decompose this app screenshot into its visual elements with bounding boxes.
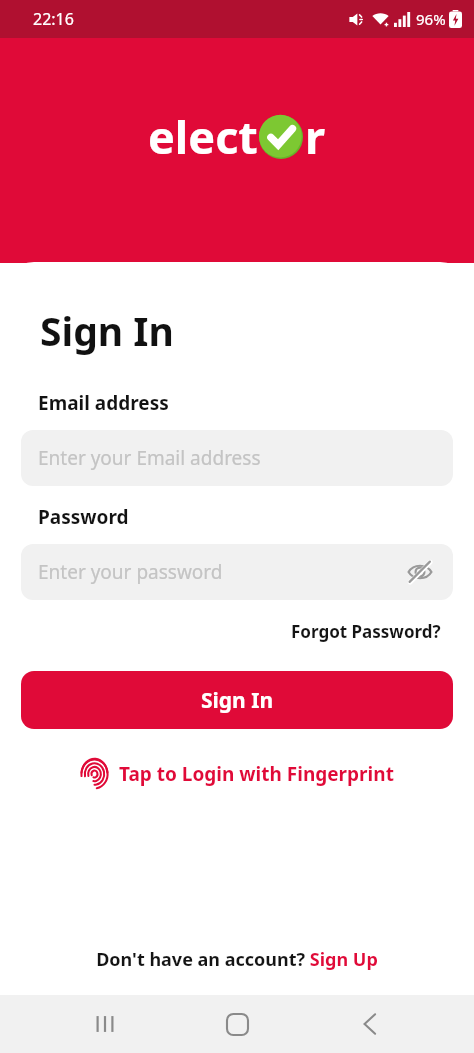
button[interactable]: Home [209, 996, 265, 1052]
button[interactable]: Don't have an account? Sign Up [90, 941, 384, 978]
staticText: Email address [38, 390, 169, 416]
staticText: elect [148, 106, 258, 167]
staticText: Sign In [201, 686, 274, 715]
staticText: Forgot Password? [291, 620, 441, 643]
staticText: Enter your Email address [38, 445, 261, 471]
button[interactable]: Enter your Email address [21, 430, 453, 486]
staticText: 22:16 [33, 8, 74, 30]
staticText: r [305, 106, 326, 167]
button[interactable]: Forgot Password? [291, 618, 474, 645]
staticText: Don't have an account? Sign Up [96, 947, 378, 972]
button[interactable]: Back [342, 996, 398, 1052]
staticText: Password [38, 504, 129, 530]
staticText: Enter your password [38, 559, 223, 585]
button[interactable]: Show password [405, 557, 435, 587]
button[interactable]: Tap to Login with Fingerprint [73, 756, 402, 791]
staticText: Sign In [40, 304, 174, 357]
button[interactable]: Enter your password [21, 544, 453, 600]
button[interactable]: Sign In [21, 671, 453, 729]
staticText: Tap to Login with Fingerprint [119, 761, 394, 787]
button[interactable]: Recent apps [77, 996, 133, 1052]
staticText: 96% [416, 9, 446, 29]
